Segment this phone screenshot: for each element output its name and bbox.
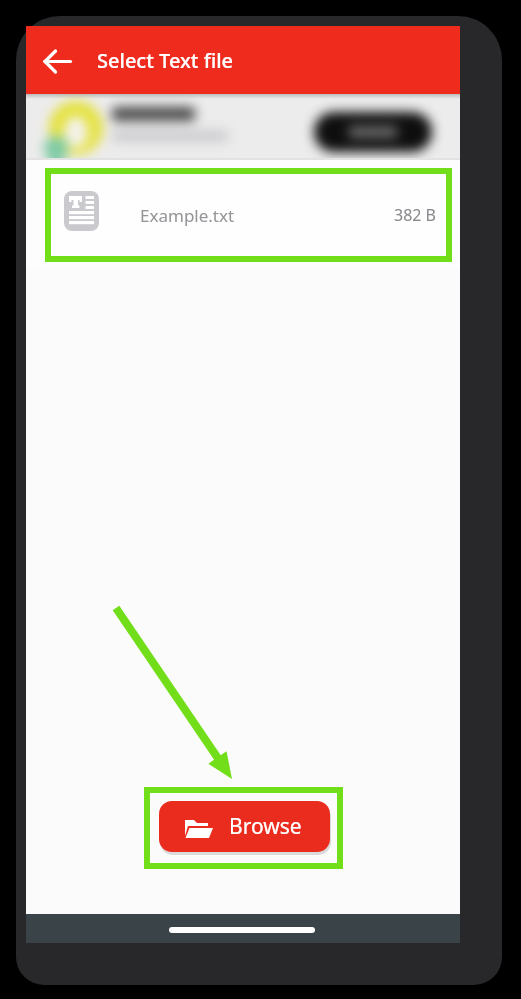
staticText: Example.txt [140, 204, 235, 227]
staticText: Select Text file [97, 47, 234, 74]
staticText: 382 B [394, 204, 437, 226]
staticText: Browse [229, 812, 302, 841]
